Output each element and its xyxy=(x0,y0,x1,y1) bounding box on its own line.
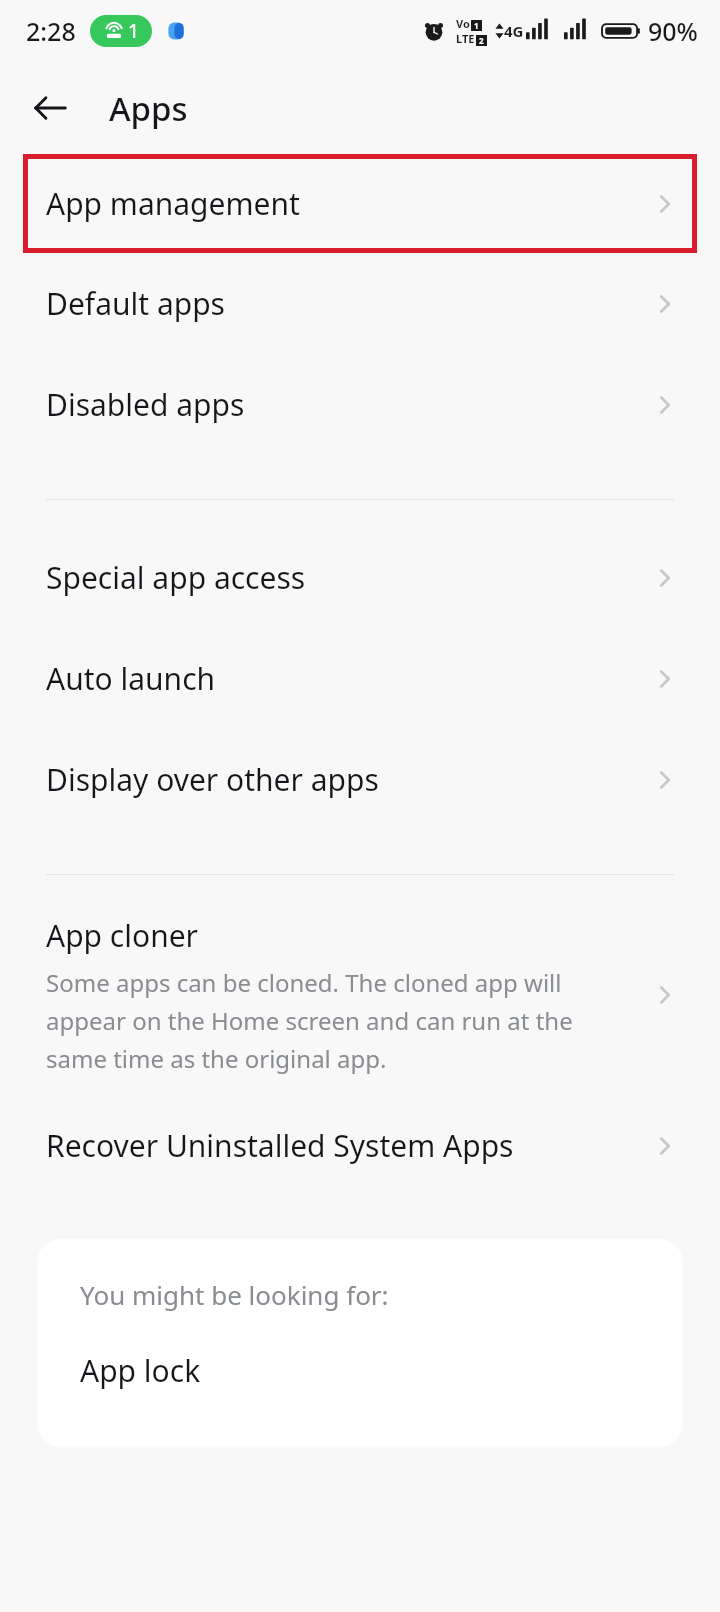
staticText: App cloner xyxy=(46,915,199,956)
staticText: You might be looking for: xyxy=(80,1277,389,1312)
staticText: 1 xyxy=(474,20,479,31)
staticText: 2 xyxy=(479,35,484,46)
staticText: Auto launch xyxy=(46,658,216,699)
staticText: App management xyxy=(46,183,300,224)
staticText: Special app access xyxy=(46,557,306,598)
button[interactable]: App management xyxy=(23,154,697,253)
staticText: Vo xyxy=(456,16,470,31)
button[interactable]: Back xyxy=(24,82,76,134)
button[interactable]: App cloner xyxy=(0,891,720,1095)
button[interactable]: Default apps xyxy=(0,253,720,354)
staticText: Recover Uninstalled System Apps xyxy=(46,1125,514,1166)
staticText: Display over other apps xyxy=(46,759,379,800)
staticText: 90% xyxy=(648,14,698,48)
button[interactable]: Disabled apps xyxy=(0,354,720,455)
staticText: 2:28 xyxy=(26,14,76,48)
staticText: Some apps can be cloned. The cloned app … xyxy=(46,966,638,1075)
staticText: 1 xyxy=(128,18,139,44)
button[interactable]: App lock xyxy=(37,1312,683,1425)
button[interactable]: Recover Uninstalled System Apps xyxy=(0,1095,720,1196)
staticText: App lock xyxy=(80,1350,201,1391)
button[interactable]: Auto launch xyxy=(0,628,720,729)
staticText: Default apps xyxy=(46,283,225,324)
button[interactable]: Special app access xyxy=(0,527,720,628)
button[interactable]: Display over other apps xyxy=(0,729,720,830)
staticText: Disabled apps xyxy=(46,384,245,425)
staticText: 4G xyxy=(504,21,524,41)
staticText: LTE xyxy=(456,31,475,46)
staticText: Apps xyxy=(109,86,188,131)
